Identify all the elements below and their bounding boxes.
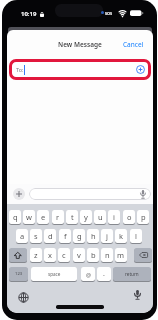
button[interactable]: n [101, 248, 113, 262]
button[interactable]: space [31, 267, 77, 281]
button[interactable] [29, 188, 151, 200]
button[interactable]: e [37, 210, 49, 224]
staticText: p [141, 212, 146, 222]
button[interactable]: k [115, 229, 127, 243]
button[interactable]: Cancel [123, 40, 144, 49]
staticText: r [56, 212, 60, 222]
button[interactable]: To: [9, 59, 151, 80]
button[interactable]: z [30, 248, 42, 262]
staticText: d [48, 231, 53, 241]
staticText: e [41, 212, 46, 222]
button[interactable] [9, 248, 27, 262]
button[interactable]: t [66, 210, 78, 224]
staticText: SOS [105, 11, 113, 16]
staticText: u [98, 212, 103, 222]
staticText: 10:19 [21, 10, 37, 18]
staticText: n [105, 250, 110, 260]
button[interactable]: j [101, 229, 113, 243]
button[interactable]: q [9, 210, 21, 224]
button[interactable] [131, 289, 143, 301]
staticText: @ [86, 271, 91, 278]
button[interactable]: s [30, 229, 42, 243]
staticText: i [113, 212, 115, 222]
staticText: c [62, 250, 66, 260]
staticText: f [64, 231, 67, 241]
button[interactable]: a [16, 229, 28, 243]
staticText: q [13, 212, 18, 222]
staticText: To: [16, 66, 24, 73]
staticText: j [106, 231, 108, 241]
button[interactable]: g [73, 229, 85, 243]
button[interactable]: d [44, 229, 56, 243]
button[interactable]: y [80, 210, 92, 224]
staticText: b [91, 250, 96, 260]
staticText: . [103, 269, 105, 279]
staticText: a [20, 231, 25, 241]
button[interactable]: return [113, 267, 151, 281]
button[interactable] [134, 248, 152, 262]
button[interactable]: o [123, 210, 135, 224]
button[interactable]: f [59, 229, 71, 243]
staticText: Cancel [123, 40, 144, 49]
button[interactable]: l [130, 229, 142, 243]
staticText: l [135, 231, 137, 241]
button[interactable]: @ [81, 267, 95, 281]
staticText: g [77, 231, 82, 241]
staticText: m [117, 250, 125, 260]
staticText: v [77, 250, 81, 260]
button[interactable]: u [94, 210, 106, 224]
staticText: space [48, 271, 61, 277]
staticText: s [34, 231, 38, 241]
button[interactable]: c [58, 248, 70, 262]
staticText: h [91, 231, 96, 241]
button[interactable]: r [52, 210, 64, 224]
button[interactable]: i [108, 210, 120, 224]
staticText: New Message [58, 40, 102, 49]
button[interactable]: v [73, 248, 85, 262]
staticText: x [48, 250, 52, 260]
staticText: t [71, 212, 74, 222]
staticText: k [119, 231, 124, 241]
button[interactable]: h [87, 229, 99, 243]
button[interactable]: x [44, 248, 56, 262]
staticText: z [34, 250, 38, 260]
staticText: y [84, 212, 88, 222]
staticText: o [127, 212, 132, 222]
button[interactable] [13, 188, 25, 200]
button[interactable]: p [137, 210, 149, 224]
button[interactable]: 123 [9, 267, 28, 281]
button[interactable]: . [97, 267, 111, 281]
button[interactable] [17, 291, 29, 303]
button[interactable]: w [23, 210, 35, 224]
button[interactable]: b [87, 248, 99, 262]
staticText: 123 [15, 271, 23, 277]
staticText: return [125, 271, 139, 277]
staticText: w [26, 212, 32, 222]
button[interactable]: m [115, 248, 127, 262]
